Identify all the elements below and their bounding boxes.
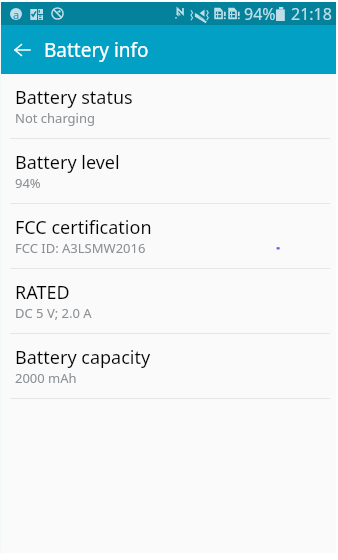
button[interactable]: FCC certification (0, 204, 338, 269)
button[interactable]: Battery status (0, 74, 338, 139)
button[interactable]: RATED (0, 269, 338, 334)
button[interactable]: Navigate up (7, 35, 37, 65)
staticText: 21:18 (291, 3, 332, 25)
staticText: FCC certification (15, 215, 152, 240)
staticText: RATED (15, 280, 70, 305)
staticText: 94% (15, 174, 41, 192)
staticText: DC 5 V; 2.0 A (15, 304, 92, 322)
button[interactable]: Battery capacity (0, 334, 338, 399)
button[interactable]: Battery level (0, 139, 338, 204)
staticText: Battery info (44, 37, 149, 63)
staticText: Battery status (15, 85, 133, 110)
staticText: a (13, 7, 20, 19)
staticText: 2000 mAh (15, 369, 77, 387)
staticText: Not charging (15, 109, 96, 127)
staticText: Battery capacity (15, 345, 151, 370)
staticText: 94% (244, 3, 276, 25)
staticText: Battery level (15, 150, 120, 175)
staticText: FCC ID: A3LSMW2016 (15, 239, 146, 257)
